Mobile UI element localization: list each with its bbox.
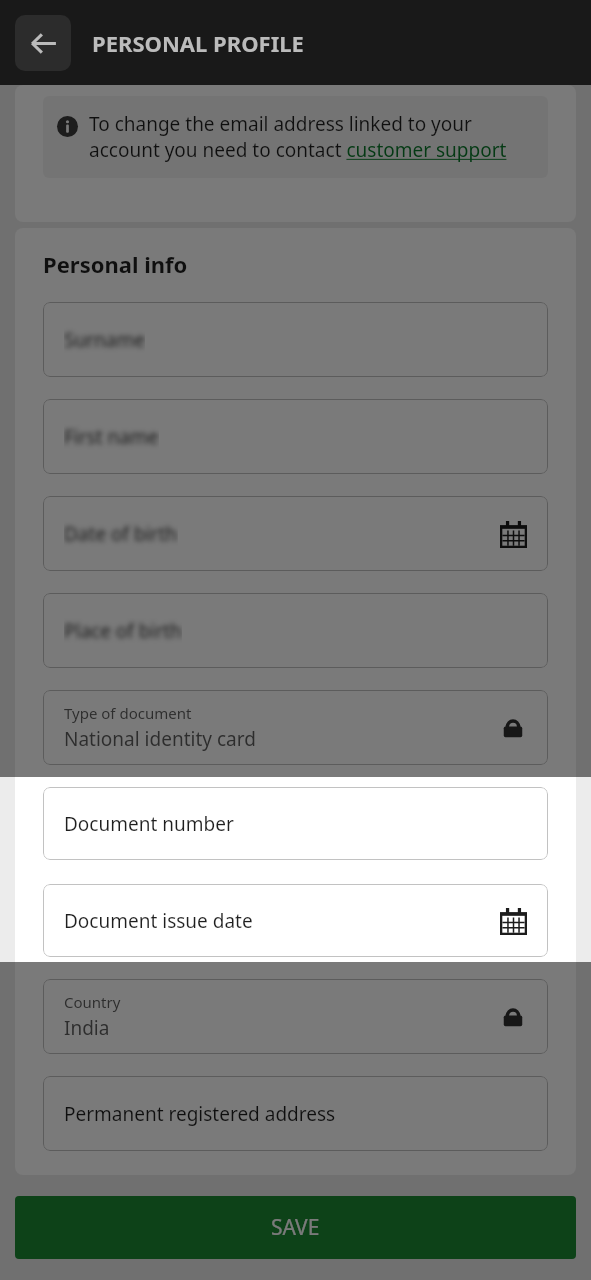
button[interactable]: Country <box>43 979 548 1054</box>
staticText: Personal info <box>43 249 188 279</box>
button[interactable]: First name <box>43 399 548 474</box>
staticText: SAVE <box>271 1213 320 1242</box>
staticText: Surname <box>64 327 145 353</box>
button[interactable]: Document issue date <box>43 884 548 957</box>
button[interactable]: Pick date <box>495 903 531 939</box>
staticText: India <box>64 1015 110 1041</box>
button[interactable]: Document number <box>43 787 548 860</box>
staticText: Permanent registered address <box>64 1101 336 1127</box>
staticText: First name <box>64 424 159 450</box>
staticText: Document number <box>64 811 234 837</box>
button[interactable]: To change the email address linked to yo… <box>57 111 534 163</box>
other: Locked field <box>495 999 531 1035</box>
button[interactable]: SAVE <box>15 1196 576 1259</box>
staticText: To change the email address linked to yo… <box>89 111 534 163</box>
button[interactable]: Back <box>15 15 71 71</box>
button[interactable]: Surname <box>43 302 548 377</box>
button[interactable]: Permanent registered address <box>43 1076 548 1151</box>
staticText: Country <box>64 992 121 1012</box>
staticText: Document issue date <box>64 908 253 934</box>
button[interactable]: Pick date <box>495 516 531 552</box>
staticText: Place of birth <box>64 618 182 644</box>
staticText: PERSONAL PROFILE <box>92 28 304 58</box>
button[interactable]: Date of birth <box>43 496 548 571</box>
staticText: Type of document <box>64 703 192 723</box>
button[interactable]: Type of document <box>43 690 548 765</box>
staticText: Date of birth <box>64 521 178 547</box>
other: Locked field <box>495 710 531 746</box>
staticText: National identity card <box>64 726 256 752</box>
button[interactable]: Place of birth <box>43 593 548 668</box>
